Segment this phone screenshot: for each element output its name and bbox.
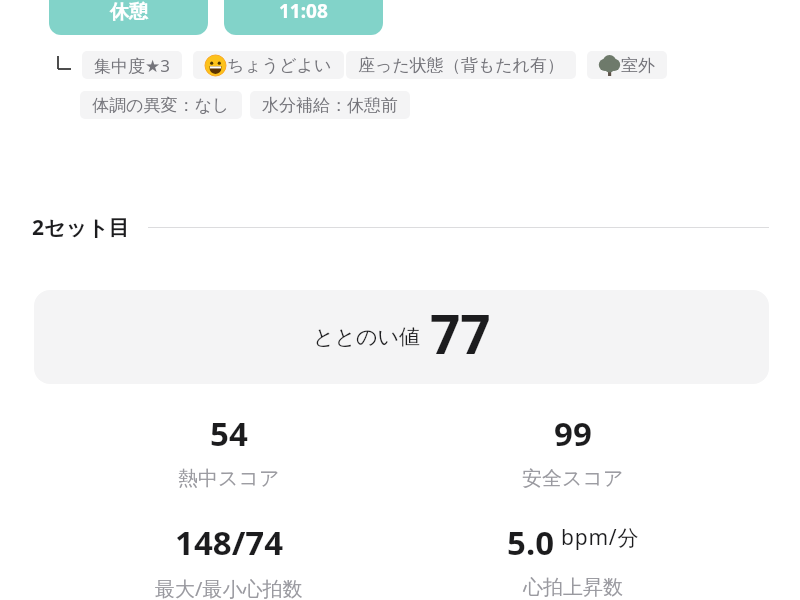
staticText: 心拍上昇数 (523, 575, 623, 600)
staticText: 77 (430, 297, 491, 369)
staticText: bpm/分 (561, 523, 640, 552)
staticText: ととのい値 (313, 324, 420, 350)
staticText: 熱中スコア (178, 466, 280, 491)
button[interactable]: 11:08 (224, 0, 383, 35)
staticText: 11:08 (279, 0, 328, 24)
button[interactable]: ととのい値 (34, 290, 769, 384)
staticText: 54 (210, 411, 248, 456)
staticText: 2セット目 (32, 213, 130, 242)
button[interactable]: 室外 (587, 51, 667, 79)
staticText: 最大/最小心拍数 (155, 575, 303, 600)
staticText: 室外 (621, 55, 655, 76)
button[interactable]: 座った状態（背もたれ有） (346, 51, 576, 79)
button[interactable]: 水分補給：休憩前 (250, 91, 410, 119)
staticText: 5.0 (507, 520, 555, 565)
staticText: ちょうどよい (227, 55, 332, 76)
button[interactable]: ちょうどよい (193, 51, 344, 79)
staticText: 体調の異変：なし (92, 95, 230, 116)
button[interactable]: 休憩 (49, 0, 208, 35)
staticText: 集中度★3 (94, 54, 170, 77)
staticText: 148/74 (175, 520, 284, 565)
staticText: 休憩 (110, 0, 148, 24)
staticText: 安全スコア (522, 466, 624, 491)
staticText: 水分補給：休憩前 (262, 95, 398, 116)
button[interactable]: 体調の異変：なし (80, 91, 242, 119)
staticText: 座った状態（背もたれ有） (358, 55, 564, 76)
button[interactable]: 集中度★3 (82, 51, 182, 79)
staticText: 99 (554, 411, 592, 456)
